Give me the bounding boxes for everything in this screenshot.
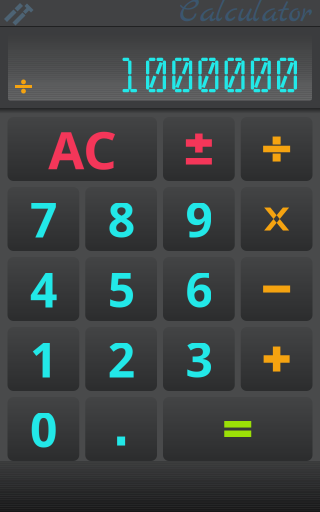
button[interactable]: 2 (85, 327, 157, 391)
staticText: 4 (30, 257, 57, 321)
button[interactable]: 3 (163, 327, 235, 391)
staticText: AC (48, 114, 116, 184)
button[interactable]: 7 (7, 187, 79, 251)
staticText: 8 (108, 187, 135, 251)
staticText: 7 (30, 187, 57, 251)
button[interactable]: Decimal point (85, 397, 157, 461)
button[interactable]: Settings (0, 0, 41, 26)
staticText: 2 (108, 327, 135, 391)
button[interactable]: AC (7, 117, 157, 181)
button[interactable]: 5 (85, 257, 157, 321)
staticText: Calculator (179, 0, 312, 35)
button[interactable]: 9 (163, 187, 235, 251)
button[interactable]: 6 (163, 257, 235, 321)
staticText: 0 (30, 397, 57, 461)
staticText: 9 (185, 187, 212, 251)
button[interactable]: Plus minus (163, 117, 235, 181)
button[interactable]: Multiply (241, 187, 313, 251)
button[interactable]: 8 (85, 187, 157, 251)
button[interactable]: Minus (241, 257, 313, 321)
staticText: 5 (108, 257, 135, 321)
button[interactable]: 4 (7, 257, 79, 321)
staticText: 1 (30, 327, 57, 391)
button[interactable]: Divide (241, 117, 313, 181)
staticText: 3 (185, 327, 212, 391)
button[interactable]: Equals (163, 397, 312, 461)
staticText: 6 (185, 257, 212, 321)
button[interactable]: 1 (7, 327, 79, 391)
button[interactable]: 0 (7, 397, 79, 461)
button[interactable]: Plus (241, 327, 313, 391)
